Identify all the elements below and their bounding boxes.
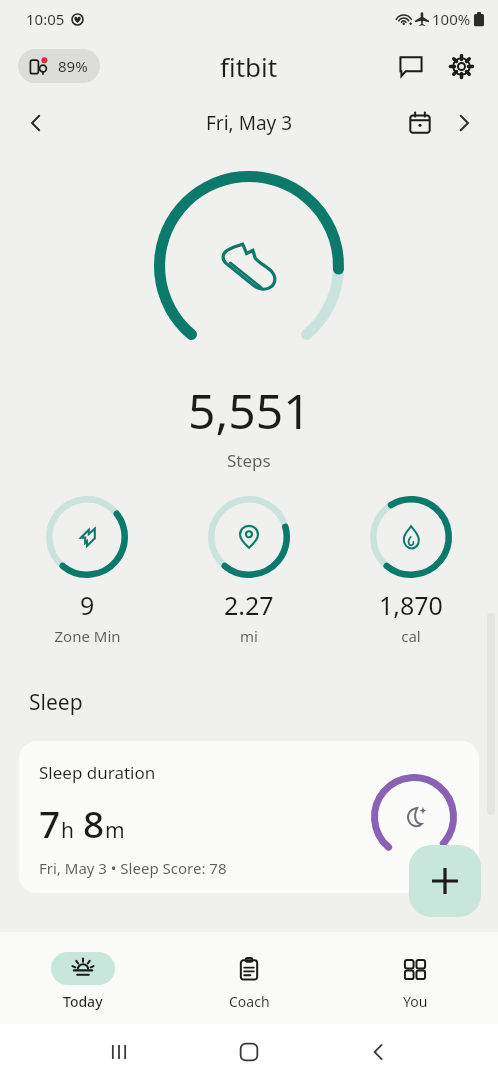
button[interactable]: Device battery 89% bbox=[18, 49, 100, 83]
button[interactable]: 9 bbox=[6, 494, 168, 646]
staticText: 10:05 bbox=[26, 9, 65, 29]
button[interactable]: You bbox=[332, 946, 498, 1011]
staticText: 1,870 bbox=[379, 588, 443, 622]
button[interactable]: Settings bbox=[438, 43, 484, 89]
staticText: You bbox=[403, 992, 428, 1011]
staticText: m bbox=[105, 816, 125, 845]
staticText: fitbit bbox=[220, 49, 278, 84]
staticText: Fri, May 3 • Sleep Score: 78 bbox=[39, 858, 227, 878]
staticText: 8 bbox=[83, 798, 105, 848]
staticText: Steps bbox=[227, 449, 271, 472]
staticText: 2.27 bbox=[224, 588, 274, 622]
staticText: Zone Min bbox=[54, 626, 121, 646]
button[interactable]: Messages bbox=[388, 43, 434, 89]
staticText: Coach bbox=[229, 992, 270, 1011]
staticText: cal bbox=[401, 626, 421, 646]
button[interactable]: 2.27 bbox=[168, 494, 330, 646]
button[interactable]: Today bbox=[0, 946, 166, 1011]
button[interactable]: Sleep duration bbox=[19, 741, 479, 893]
staticText: mi bbox=[240, 626, 258, 646]
staticText: Sleep bbox=[29, 688, 83, 717]
button[interactable]: Next day bbox=[442, 101, 486, 145]
staticText: h bbox=[61, 816, 74, 845]
staticText: 9 bbox=[80, 588, 95, 622]
staticText: Sleep duration bbox=[39, 761, 156, 784]
button[interactable]: Calendar bbox=[398, 101, 442, 145]
button[interactable]: Previous day bbox=[14, 101, 58, 145]
button[interactable]: 1,870 bbox=[330, 494, 492, 646]
staticText: 100% bbox=[432, 9, 471, 29]
staticText: Today bbox=[63, 992, 103, 1011]
staticText: 5,551 bbox=[188, 378, 311, 443]
staticText: 7 bbox=[39, 798, 61, 848]
staticText: Fri, May 3 bbox=[206, 110, 293, 136]
staticText: 89% bbox=[58, 56, 88, 76]
button[interactable]: Add bbox=[409, 845, 481, 917]
button[interactable]: Coach bbox=[166, 946, 332, 1011]
